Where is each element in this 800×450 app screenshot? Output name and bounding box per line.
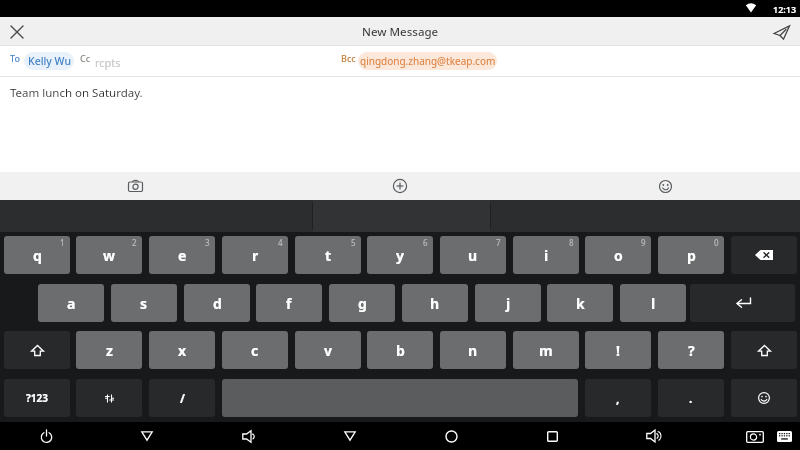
button[interactable]: k: [547, 284, 613, 322]
button[interactable]: o: [585, 236, 651, 274]
button[interactable]: u: [440, 236, 506, 274]
button[interactable]: a: [38, 284, 104, 322]
button[interactable]: [731, 331, 797, 369]
staticText: .: [689, 390, 693, 406]
button[interactable]: t: [295, 236, 361, 274]
button[interactable]: p: [658, 236, 724, 274]
staticText: y: [396, 246, 404, 265]
staticText: c: [251, 341, 259, 360]
button[interactable]: s: [111, 284, 177, 322]
button[interactable]: v: [295, 331, 361, 369]
button[interactable]: [540, 424, 564, 448]
staticText: r: [252, 246, 259, 265]
button[interactable]: m: [513, 331, 579, 369]
staticText: 7: [496, 237, 501, 248]
button[interactable]: n: [440, 331, 506, 369]
button[interactable]: !: [585, 331, 651, 369]
staticText: 2: [132, 237, 137, 248]
staticText: j: [506, 294, 511, 313]
staticText: Bcc: [341, 52, 356, 64]
button[interactable]: j: [475, 284, 541, 322]
staticText: 0: [714, 237, 719, 248]
button[interactable]: w: [76, 236, 142, 274]
staticText: o: [614, 246, 623, 265]
staticText: x: [178, 341, 187, 360]
button[interactable]: x: [149, 331, 215, 369]
button[interactable]: [34, 424, 58, 448]
button[interactable]: [123, 174, 147, 198]
button[interactable]: [641, 424, 665, 448]
button[interactable]: ?123: [4, 379, 70, 417]
staticText: b: [396, 341, 405, 360]
staticText: 1: [60, 237, 65, 248]
staticText: 4: [278, 237, 283, 248]
staticText: t: [325, 246, 332, 265]
button[interactable]: [690, 284, 795, 322]
staticText: New Message: [362, 24, 439, 40]
button[interactable]: Kelly Wu: [24, 52, 74, 70]
staticText: /: [180, 390, 185, 406]
button[interactable]: [388, 174, 412, 198]
staticText: Cc: [80, 52, 91, 64]
staticText: u: [468, 246, 478, 265]
staticText: 5: [351, 237, 356, 248]
button[interactable]: z: [76, 331, 142, 369]
staticText: !: [616, 341, 620, 360]
button[interactable]: h: [402, 284, 468, 322]
button[interactable]: [338, 424, 362, 448]
button[interactable]: e: [149, 236, 215, 274]
staticText: n: [468, 341, 478, 360]
staticText: 9: [641, 237, 646, 248]
button[interactable]: /: [149, 379, 215, 417]
staticText: ,: [616, 390, 620, 406]
button[interactable]: c: [222, 331, 288, 369]
staticText: h: [430, 294, 440, 313]
button[interactable]: [743, 424, 767, 448]
button[interactable]: ,: [585, 379, 651, 417]
button[interactable]: .: [658, 379, 724, 417]
button[interactable]: [135, 424, 159, 448]
staticText: ?: [688, 341, 695, 360]
staticText: k: [576, 294, 585, 313]
staticText: 12:13: [773, 3, 797, 15]
button[interactable]: [731, 236, 797, 274]
staticText: a: [67, 294, 76, 313]
button[interactable]: [731, 379, 797, 417]
button[interactable]: i: [513, 236, 579, 274]
staticText: 6: [423, 237, 428, 248]
staticText: l: [651, 294, 656, 313]
staticText: Team lunch on Saturday.: [10, 85, 143, 101]
button[interactable]: [772, 424, 796, 448]
button[interactable]: [76, 379, 142, 417]
staticText: rcpts: [95, 55, 121, 70]
button[interactable]: ?: [658, 331, 724, 369]
staticText: 8: [569, 237, 574, 248]
button[interactable]: [653, 174, 677, 198]
button[interactable]: [5, 20, 29, 44]
staticText: g: [358, 294, 367, 313]
button[interactable]: qingdong.zhang@tkeap.com: [358, 52, 497, 70]
staticText: z: [106, 341, 113, 360]
button[interactable]: l: [620, 284, 686, 322]
button[interactable]: d: [184, 284, 250, 322]
staticText: q: [33, 246, 42, 265]
staticText: Kelly Wu: [28, 54, 71, 68]
button[interactable]: q: [4, 236, 70, 274]
staticText: m: [539, 341, 553, 360]
button[interactable]: [439, 424, 463, 448]
staticText: i: [544, 246, 549, 265]
staticText: w: [103, 246, 115, 265]
button[interactable]: [4, 331, 70, 369]
button[interactable]: g: [329, 284, 395, 322]
button[interactable]: r: [222, 236, 288, 274]
button[interactable]: [236, 424, 260, 448]
staticText: qingdong.zhang@tkeap.com: [360, 54, 496, 68]
button[interactable]: f: [256, 284, 322, 322]
button[interactable]: y: [367, 236, 433, 274]
staticText: s: [140, 294, 148, 313]
button[interactable]: [768, 20, 796, 44]
staticText: ?123: [26, 391, 48, 405]
staticText: f: [286, 294, 292, 313]
button[interactable]: b: [367, 331, 433, 369]
